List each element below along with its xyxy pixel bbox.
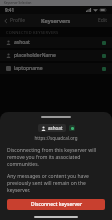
button[interactable]: placeholderName	[0, 50, 112, 61]
other: Connected	[102, 41, 106, 45]
staticText: CONNECTED KEYSERVERS	[6, 30, 59, 35]
button[interactable]: Back	[0, 15, 30, 26]
staticText: Disconnect keyserver	[31, 201, 82, 208]
staticText: ashoat	[14, 39, 30, 46]
staticText: 9:41	[5, 7, 14, 13]
other: Connected	[102, 54, 106, 58]
staticText: Disconnecting from this keyserver will r…	[7, 147, 105, 168]
staticText: Any messages or content you have previou…	[7, 173, 105, 194]
staticText: laptopname	[14, 65, 43, 72]
staticText: Keyserver Selection	[4, 1, 32, 5]
other: Back	[4, 19, 8, 23]
other: Connected	[102, 67, 106, 71]
staticText: Keyservers	[41, 17, 71, 24]
button[interactable]: Disconnect keyserver	[7, 199, 105, 210]
staticText: https://squadcal.org	[0, 135, 112, 141]
staticText: ashoat	[48, 125, 63, 131]
button[interactable]: Edit	[93, 14, 112, 27]
button[interactable]: laptopname	[0, 63, 112, 74]
staticText: Edit	[98, 17, 107, 24]
staticText: Profile	[10, 17, 26, 24]
staticText: placeholderName	[14, 52, 56, 59]
button[interactable]: ashoat	[0, 37, 112, 48]
